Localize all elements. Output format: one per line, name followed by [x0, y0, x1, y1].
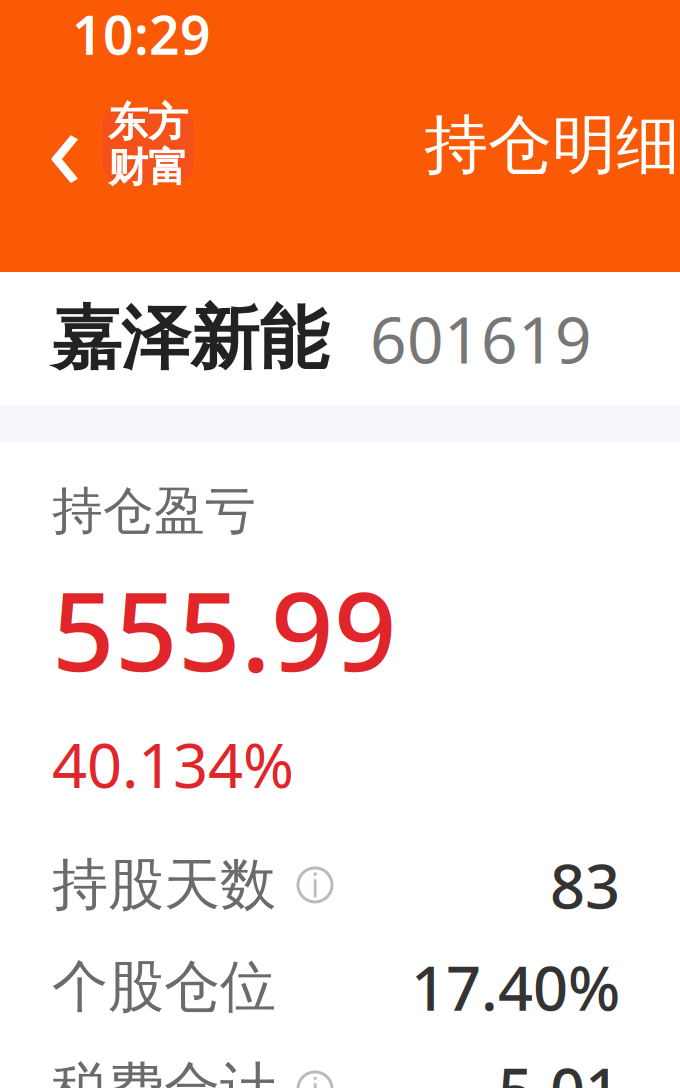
staticText: 税费合计 [52, 1054, 276, 1088]
staticText: 持仓盈亏 [52, 480, 256, 542]
staticText: 601619 [370, 296, 592, 381]
staticText: 持仓明细 [424, 106, 680, 184]
staticText: 个股仓位 [52, 952, 276, 1021]
button[interactable]: East Money home [102, 107, 194, 183]
button[interactable]: 税费合计 [52, 1065, 620, 1088]
staticText: 83 [550, 844, 620, 926]
staticText: 17.40% [411, 946, 620, 1028]
staticText: 嘉泽新能 [52, 296, 328, 381]
staticText: i [311, 864, 319, 906]
staticText: i [311, 1068, 319, 1088]
button[interactable]: 持股天数 [52, 861, 620, 909]
staticText: 持股天数 [52, 850, 276, 919]
staticText: 5.01 [498, 1048, 620, 1088]
staticText: ‹ [47, 69, 83, 221]
staticText: 东方 [108, 98, 188, 147]
button[interactable]: Back [28, 101, 102, 189]
staticText: 555.99 [52, 556, 397, 701]
button[interactable]: 个股仓位 [52, 963, 620, 1011]
staticText: 财富 [108, 143, 188, 192]
staticText: 10:29 [72, 0, 211, 69]
staticText: 40.134% [52, 723, 294, 805]
